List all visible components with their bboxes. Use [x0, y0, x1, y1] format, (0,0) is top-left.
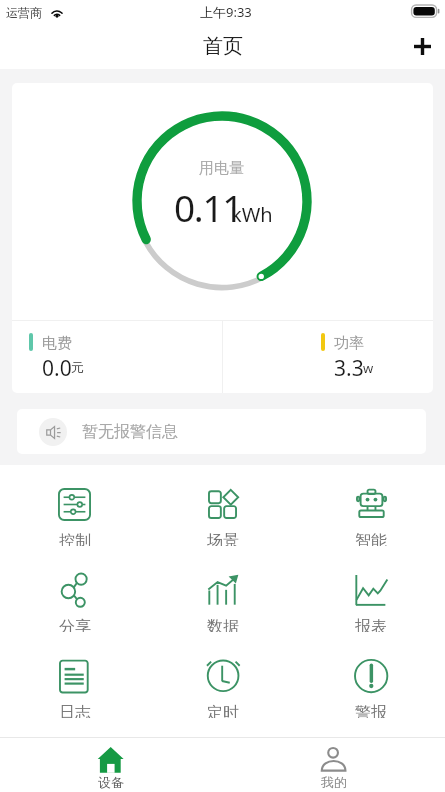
staticText: 用电量 — [199, 159, 244, 178]
staticText: 数据 — [207, 617, 239, 632]
staticText: 日志 — [59, 703, 91, 718]
staticText: 0.11 — [174, 182, 243, 232]
staticText: 场景 — [207, 531, 239, 546]
button[interactable]: 设备 — [0, 738, 222, 792]
staticText: 功率 — [334, 334, 364, 353]
staticText: 控制 — [59, 531, 91, 546]
staticText: kWh — [231, 201, 273, 228]
staticText: 运营商 — [6, 5, 42, 20]
button[interactable]: 报表 — [297, 560, 445, 632]
staticText: 分享 — [59, 617, 91, 632]
button[interactable]: 暂无报警信息 — [17, 409, 426, 454]
button[interactable]: 日志 — [0, 646, 149, 718]
button[interactable]: Add device — [399, 24, 445, 69]
button[interactable]: 定时 — [149, 646, 297, 718]
staticText: 报表 — [355, 617, 387, 632]
button[interactable]: 功率 — [320, 333, 420, 378]
staticText: 我的 — [321, 774, 347, 790]
staticText: 电费 — [42, 334, 72, 353]
button[interactable]: 场景 — [149, 474, 297, 546]
button[interactable]: 数据 — [149, 560, 297, 632]
staticText: 暂无报警信息 — [82, 422, 178, 442]
button[interactable]: 智能 — [297, 474, 445, 546]
button[interactable]: 分享 — [0, 560, 149, 632]
staticText: 警报 — [355, 703, 387, 718]
button[interactable]: 控制 — [0, 474, 149, 546]
button[interactable]: 警报 — [297, 646, 445, 718]
staticText: 设备 — [98, 774, 124, 790]
button[interactable]: 电费 — [28, 333, 128, 378]
staticText: 首页 — [203, 34, 243, 59]
staticText: 上午9:33 — [200, 3, 252, 21]
staticText: 智能 — [355, 531, 387, 546]
staticText: 元 — [71, 359, 84, 375]
staticText: 定时 — [207, 703, 239, 718]
staticText: w — [363, 359, 374, 377]
button[interactable]: 我的 — [222, 738, 445, 792]
staticText: 3.3 — [334, 354, 364, 383]
staticText: 0.0 — [42, 354, 72, 383]
